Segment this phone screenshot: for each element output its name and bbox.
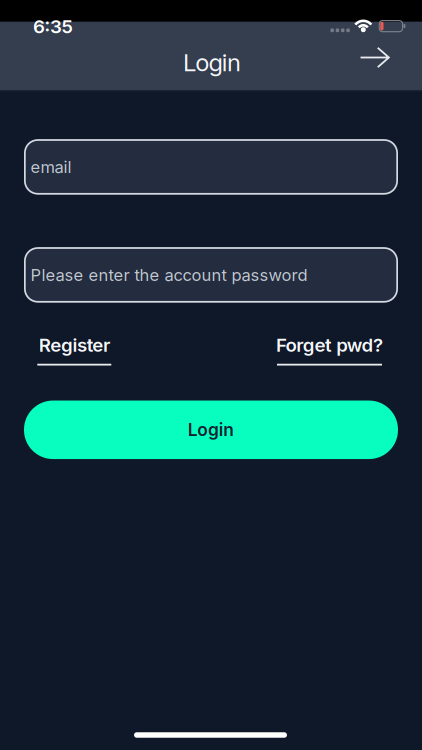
staticText: Login: [183, 48, 241, 77]
button[interactable]: Login: [24, 401, 398, 459]
staticText: Forget pwd?: [276, 334, 383, 356]
staticText: 6:35: [33, 15, 72, 38]
button[interactable]: Submit: [360, 47, 390, 68]
button[interactable]: Please enter the account password: [24, 247, 398, 303]
button[interactable]: email: [24, 139, 398, 195]
staticText: Login: [188, 419, 234, 440]
button[interactable]: Forget pwd?: [276, 334, 383, 366]
staticText: Please enter the account password: [30, 265, 307, 285]
staticText: Register: [39, 334, 110, 356]
button[interactable]: Register: [37, 334, 111, 366]
staticText: email: [30, 157, 71, 177]
